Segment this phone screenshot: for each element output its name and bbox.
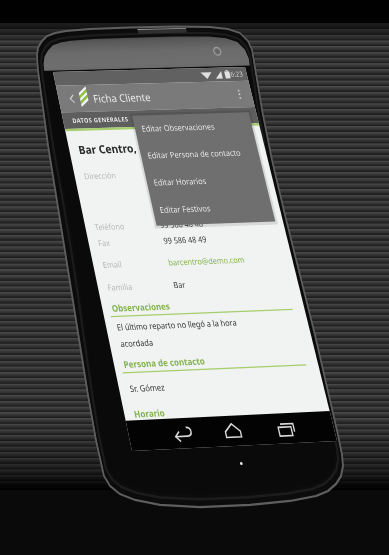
button[interactable]	[0, 0, 389, 555]
